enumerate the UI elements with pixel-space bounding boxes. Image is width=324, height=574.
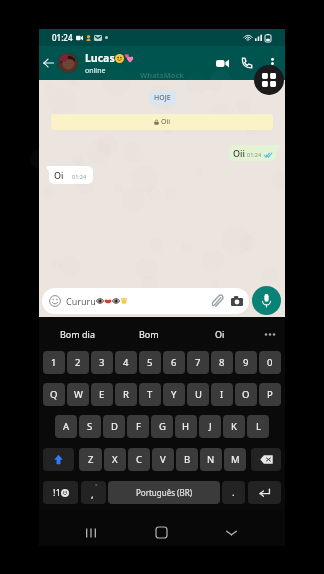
staticText: 4 [123,356,129,369]
staticText: 0 [267,356,273,369]
button[interactable]: 1 [43,351,65,374]
button[interactable]: Bom [113,317,184,351]
staticText: V [160,453,166,466]
button[interactable]: H [175,415,197,438]
button[interactable]: Hide keyboard [196,519,266,546]
staticText: HOJE [154,93,171,103]
staticText: E [99,388,105,401]
button[interactable]: C [128,448,150,471]
button[interactable]: 7 [187,351,209,374]
button[interactable]: Recents [56,519,126,546]
staticText: O [242,388,250,401]
staticText: 9 [243,356,249,369]
button[interactable]: ° [81,481,106,504]
staticText: Oi [54,169,64,181]
staticText: Cururu [66,295,96,307]
button[interactable]: !1 [43,481,78,504]
button[interactable]: Video call [210,46,234,80]
staticText: 8 [219,356,225,369]
staticText: Lucas [85,51,115,65]
button[interactable]: J [199,415,221,438]
button[interactable]: 6 [163,351,185,374]
staticText: P [267,388,273,401]
staticText: G [159,420,166,433]
staticText: 01:24 [247,151,262,158]
button[interactable]: Cururu [42,288,249,314]
button[interactable]: Lucas [85,51,210,76]
button[interactable]: Back [39,46,58,80]
staticText: !1 [53,486,61,499]
staticText: Q [50,388,58,401]
button[interactable]: 4 [115,351,137,374]
staticText: Bom [139,328,159,340]
button[interactable]: M [224,448,246,471]
staticText: W [74,388,83,401]
button[interactable]: Oi [184,317,255,351]
button[interactable]: F [127,415,149,438]
button[interactable]: Q [43,383,65,406]
staticText: S [87,420,93,433]
staticText: WhatsMock [140,70,184,80]
button[interactable]: Home [126,519,196,546]
staticText: Oii [233,147,245,159]
button[interactable]: Call [234,46,259,80]
button[interactable]: Y [163,383,185,406]
button[interactable]: 8 [211,351,233,374]
button[interactable]: Bom dia [42,317,113,351]
button[interactable]: K [223,415,245,438]
button[interactable]: 5 [139,351,161,374]
button[interactable]: Shift [43,448,74,471]
staticText: 01:24 [72,173,87,180]
button[interactable]: . [222,481,245,504]
button[interactable]: Enter [248,481,281,504]
staticText: X [112,453,118,466]
button[interactable] [58,53,78,73]
staticText: 2 [75,356,81,369]
staticText: Oii [161,117,171,127]
button[interactable]: E [91,383,113,406]
staticText: ° [95,482,98,490]
staticText: J [209,420,212,433]
staticText: , [91,488,94,501]
staticText: U [195,388,202,401]
button[interactable]: 2 [67,351,89,374]
button[interactable]: More suggestions [255,317,285,351]
button[interactable]: T [139,383,161,406]
staticText: Bom dia [60,328,95,340]
staticText: F [136,420,141,433]
button[interactable]: D [103,415,125,438]
button[interactable]: P [259,383,281,406]
staticText: 6 [171,356,177,369]
button[interactable]: Voice message [252,286,281,315]
staticText: R [123,388,129,401]
button[interactable]: Z [79,448,102,471]
button[interactable]: 9 [235,351,257,374]
staticText: N [207,453,215,466]
button[interactable]: W [67,383,89,406]
button[interactable]: B [176,448,198,471]
staticText: T [147,388,153,401]
staticText: Z [88,453,94,466]
staticText: C [136,453,143,466]
button[interactable]: I [211,383,233,406]
button[interactable]: X [104,448,126,471]
button[interactable]: Português (BR) [108,481,220,504]
button[interactable]: V [152,448,174,471]
button[interactable]: N [200,448,222,471]
staticText: Y [171,388,177,401]
button[interactable]: Backspace [251,448,281,471]
button[interactable]: R [115,383,137,406]
button[interactable]: G [151,415,173,438]
button[interactable]: 0 [259,351,281,374]
staticText: A [63,420,70,433]
button[interactable]: O [235,383,257,406]
staticText: 5 [147,356,153,369]
button[interactable]: S [79,415,101,438]
button[interactable]: More options [259,46,285,80]
button[interactable]: A [55,415,77,438]
staticText: 01:24 [52,32,73,43]
button[interactable]: U [187,383,209,406]
button[interactable]: Assistive menu [254,65,284,95]
button[interactable]: 3 [91,351,113,374]
button[interactable]: L [247,415,269,438]
